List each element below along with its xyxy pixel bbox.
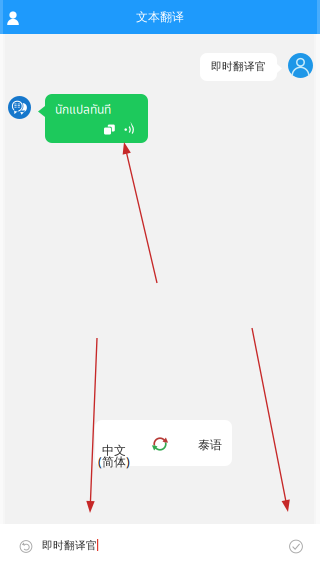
button[interactable]: Play audio [119,123,141,136]
button[interactable]: Swap languages [140,421,180,467]
button[interactable]: Copy [99,123,119,136]
staticText: นักแปลทันที [55,101,111,119]
staticText: 中文 [102,443,126,458]
button[interactable]: Reset [6,528,46,561]
button[interactable]: 泰语 [189,422,231,468]
button[interactable]: 中文 [91,433,137,479]
button[interactable]: Send [276,528,316,561]
staticText: 文本翻译 [136,10,184,24]
staticText: 泰语 [198,438,222,452]
button[interactable]: Profile [0,1,28,35]
staticText: 即时翻译官 [42,539,97,552]
staticText: (简体) [98,453,130,469]
staticText: 即时翻译官 [211,60,266,73]
